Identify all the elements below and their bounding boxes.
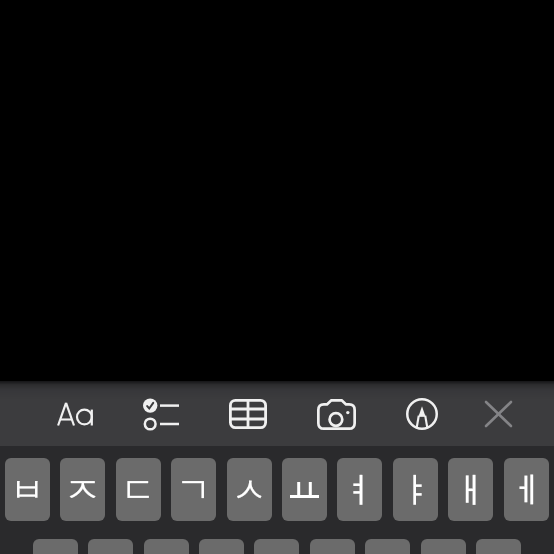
staticText: ㅈ [65,468,100,512]
staticText: ㄷ [121,468,156,512]
button[interactable]: Text formatting [47,390,107,438]
staticText: ㅕ [342,468,377,512]
button[interactable]: ㅏ [421,539,466,554]
button[interactable]: ㄱ [171,458,216,521]
button[interactable]: ㅣ [476,539,521,554]
button[interactable]: ㅐ [448,458,493,521]
button[interactable]: ㄴ [88,539,133,554]
staticText: ㅅ [232,468,267,512]
staticText: ㅔ [509,468,544,512]
button[interactable]: Table [220,390,276,438]
button[interactable]: ㅂ [5,458,50,521]
button[interactable]: Camera [308,390,364,438]
button[interactable] [310,539,355,554]
staticText: ㅐ [453,468,488,512]
button[interactable]: Close keyboard [473,390,523,438]
staticText: ㄱ [176,468,211,512]
button[interactable]: ㅔ [504,458,549,521]
button[interactable]: ㅁ [33,539,78,554]
button[interactable]: ㅈ [60,458,105,521]
button[interactable]: ㅎ [254,539,299,554]
button[interactable] [282,458,327,521]
button[interactable]: ㄹ [199,539,244,554]
button[interactable]: ㅅ [227,458,272,521]
button[interactable]: ㅇ [144,539,189,554]
staticText: ㅂ [10,468,45,512]
button[interactable]: ㅓ [365,539,410,554]
button[interactable]: Markup [396,390,448,438]
staticText: ㅑ [398,468,433,512]
button[interactable]: ㅕ [337,458,382,521]
button[interactable]: ㄷ [116,458,161,521]
button[interactable]: ㅑ [393,458,438,521]
button[interactable]: Checklist [133,390,189,438]
